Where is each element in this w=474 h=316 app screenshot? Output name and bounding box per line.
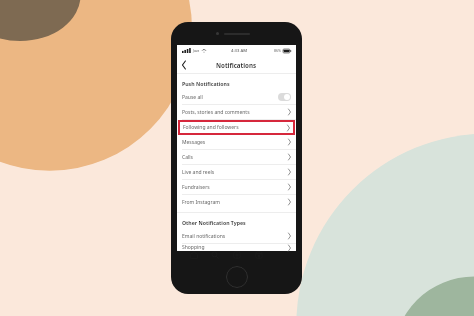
staticText: Shopping xyxy=(182,244,205,251)
staticText: Email notifications xyxy=(182,233,226,240)
staticText: Posts, stories and comments xyxy=(182,109,250,116)
staticText: Other Notification Types xyxy=(182,219,246,226)
button[interactable]: Fundraisers xyxy=(177,180,296,194)
staticText: Fundraisers xyxy=(182,184,210,191)
button[interactable]: From Instagram xyxy=(177,195,296,209)
button[interactable]: Posts, stories and comments xyxy=(177,105,296,119)
button[interactable]: Following and followers xyxy=(178,120,295,135)
button[interactable]: Live and reels xyxy=(177,165,296,179)
button[interactable]: Pause all xyxy=(177,90,296,104)
staticText: 4:33 AM xyxy=(231,48,248,54)
staticText: Following and followers xyxy=(183,124,239,131)
staticText: Messages xyxy=(182,139,206,146)
staticText: Push Notifications xyxy=(182,80,230,87)
staticText: Notifications xyxy=(216,61,257,69)
staticText: 86% xyxy=(274,48,282,53)
staticText: Pause all xyxy=(182,94,203,101)
button[interactable]: Calls xyxy=(177,150,296,164)
staticText: Jazz xyxy=(193,48,200,53)
button[interactable]: Email notifications xyxy=(177,229,296,243)
staticText: From Instagram xyxy=(182,199,220,206)
button[interactable]: Shopping xyxy=(177,244,296,251)
staticText: Calls xyxy=(182,154,193,161)
button[interactable]: Messages xyxy=(177,135,296,149)
staticText: Live and reels xyxy=(182,169,215,176)
button[interactable]: Back xyxy=(177,58,191,72)
